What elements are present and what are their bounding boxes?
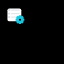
button[interactable]: Settings bbox=[15, 15, 25, 25]
button[interactable] bbox=[0, 0, 64, 64]
